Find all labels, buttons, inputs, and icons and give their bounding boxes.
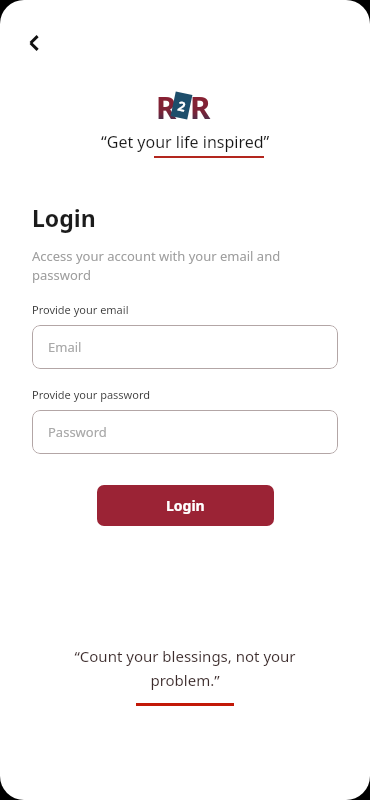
staticText: “Count your blessings, not your problem.… bbox=[46, 646, 324, 690]
staticText: R bbox=[156, 86, 177, 124]
staticText: Access your account with your email and … bbox=[32, 247, 338, 284]
staticText: R bbox=[190, 86, 211, 124]
button[interactable]: Password bbox=[32, 410, 338, 454]
staticText: 2 bbox=[176, 96, 188, 116]
staticText: Email bbox=[48, 338, 82, 356]
button[interactable]: Email bbox=[32, 325, 338, 369]
button[interactable]: Login bbox=[97, 485, 274, 526]
staticText: “Get your life inspired” bbox=[101, 131, 270, 153]
button[interactable]: Back bbox=[13, 22, 55, 64]
staticText: Login bbox=[166, 496, 205, 515]
staticText: Provide your email bbox=[32, 302, 129, 317]
staticText: Provide your password bbox=[32, 387, 150, 402]
staticText: Password bbox=[48, 423, 107, 441]
staticText: Login bbox=[32, 202, 96, 233]
